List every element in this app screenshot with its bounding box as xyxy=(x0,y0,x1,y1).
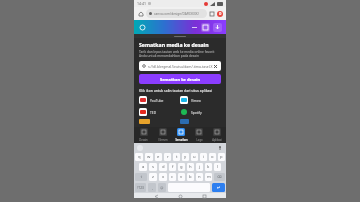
button[interactable]: Home xyxy=(137,10,144,17)
staticText: Spotify xyxy=(191,110,202,114)
button[interactable]: u xyxy=(191,153,198,161)
button[interactable]: l xyxy=(214,163,221,171)
button[interactable]: Desain xyxy=(134,127,153,143)
staticText: Tarik dan lepas tautan web ke media onli… xyxy=(139,50,221,58)
staticText: z xyxy=(152,174,154,180)
button[interactable]: Sematkan ke desain xyxy=(139,74,221,84)
button[interactable]: Tabs xyxy=(209,11,215,17)
button[interactable]: Shift xyxy=(135,173,147,181)
staticText: Elemen xyxy=(158,138,168,142)
button[interactable]: o xyxy=(209,153,216,161)
button[interactable]: Home xyxy=(138,23,146,31)
button[interactable]: Vimeo xyxy=(180,95,221,104)
button[interactable]: y xyxy=(182,153,189,161)
staticText: Desain xyxy=(139,138,148,142)
staticText: e xyxy=(157,154,160,160)
button[interactable]: r xyxy=(164,153,171,161)
button[interactable]: d xyxy=(159,163,167,171)
staticText: h xyxy=(189,164,192,170)
button[interactable]: f xyxy=(169,163,176,171)
button[interactable]: s://dl.blergmal.5eutsu/dam/-tima-tasel.X xyxy=(142,61,218,71)
staticText: t xyxy=(176,154,178,160)
button[interactable]: i xyxy=(200,153,207,161)
staticText: ?123 xyxy=(137,186,144,190)
button[interactable]: Logo xyxy=(190,127,208,143)
button[interactable]: p xyxy=(218,153,225,161)
staticText: i xyxy=(203,154,205,160)
staticText: j xyxy=(199,164,201,170)
staticText: y xyxy=(184,154,187,160)
staticText: 14:41 xyxy=(137,1,146,6)
button[interactable]: Clear xyxy=(213,64,218,69)
button[interactable]: t xyxy=(173,153,180,161)
staticText: YouTube xyxy=(150,98,164,102)
staticText: s://dl.blergmal.5eutsu/dam/-tima-tasel.X xyxy=(148,64,213,69)
staticText: canva.com/design/DAF0XXXX/edit xyxy=(154,12,204,16)
staticText: n xyxy=(198,174,201,180)
staticText: TED xyxy=(150,110,157,114)
button[interactable]: b xyxy=(187,173,194,181)
button[interactable]: Recents xyxy=(202,194,206,198)
staticText: Aplikasi xyxy=(212,138,222,142)
button[interactable]: Enter xyxy=(212,183,225,192)
button[interactable]: c xyxy=(169,173,176,181)
button[interactable]: Menu xyxy=(217,11,223,17)
staticText: a xyxy=(142,164,145,170)
staticText: f xyxy=(172,164,174,170)
staticText: m xyxy=(207,174,211,180)
staticText: g xyxy=(180,164,183,170)
button[interactable]: Sematkan xyxy=(172,127,190,143)
button[interactable]: z xyxy=(149,173,157,181)
button[interactable]: k xyxy=(205,163,212,171)
staticText: v xyxy=(180,174,183,180)
button[interactable]: e xyxy=(155,153,162,161)
staticText: x xyxy=(162,174,165,180)
staticText: r xyxy=(167,154,169,160)
staticText: p xyxy=(220,154,223,160)
button[interactable]: Symbols xyxy=(135,183,146,192)
staticText: k xyxy=(207,164,210,170)
button[interactable]: n xyxy=(196,173,203,181)
staticText: O xyxy=(219,12,222,16)
button[interactable]: Elemen xyxy=(153,127,172,143)
staticText: ⌫ xyxy=(217,175,222,179)
button[interactable]: x xyxy=(159,173,167,181)
button[interactable]: q xyxy=(135,153,143,161)
staticText: d xyxy=(162,164,165,170)
button[interactable]: s xyxy=(149,163,157,171)
staticText: l xyxy=(217,164,219,170)
button[interactable]: m xyxy=(205,173,212,181)
staticText: c xyxy=(171,174,174,180)
button[interactable]: YouTube xyxy=(139,95,180,104)
button[interactable]: Emoji xyxy=(158,183,166,192)
button[interactable]: Download xyxy=(213,23,222,32)
staticText: u xyxy=(193,154,196,160)
button[interactable]: Back xyxy=(154,194,158,198)
button[interactable]: v xyxy=(178,173,185,181)
button[interactable]: TED xyxy=(139,107,180,116)
staticText: Klik ikon untuk salin tautan dari situs … xyxy=(139,88,221,92)
staticText: , xyxy=(152,186,153,190)
button[interactable]: Comma xyxy=(148,183,156,192)
staticText: Vimeo xyxy=(191,98,201,102)
button[interactable]: Settings xyxy=(137,145,143,151)
button[interactable]: Undo xyxy=(190,23,198,31)
staticText: o xyxy=(211,154,214,160)
button[interactable]: h xyxy=(187,163,194,171)
button[interactable]: j xyxy=(196,163,203,171)
button[interactable]: Share xyxy=(201,23,210,32)
button[interactable]: Home xyxy=(178,194,182,198)
staticText: Sematkan xyxy=(175,138,188,142)
button[interactable]: Voice input xyxy=(217,145,223,151)
staticText: b xyxy=(189,174,192,180)
staticText: Sematkan ke desain xyxy=(160,77,201,82)
button[interactable]: Aplikasi xyxy=(208,127,226,143)
staticText: ☺ xyxy=(160,186,164,190)
button[interactable]: canva.com/design/DAF0XXXX/edit xyxy=(149,9,204,18)
button[interactable]: Backspace xyxy=(214,173,225,181)
button[interactable]: Spotify xyxy=(180,107,221,116)
button[interactable]: w xyxy=(145,153,153,161)
button[interactable]: a xyxy=(139,163,147,171)
button[interactable]: g xyxy=(178,163,185,171)
